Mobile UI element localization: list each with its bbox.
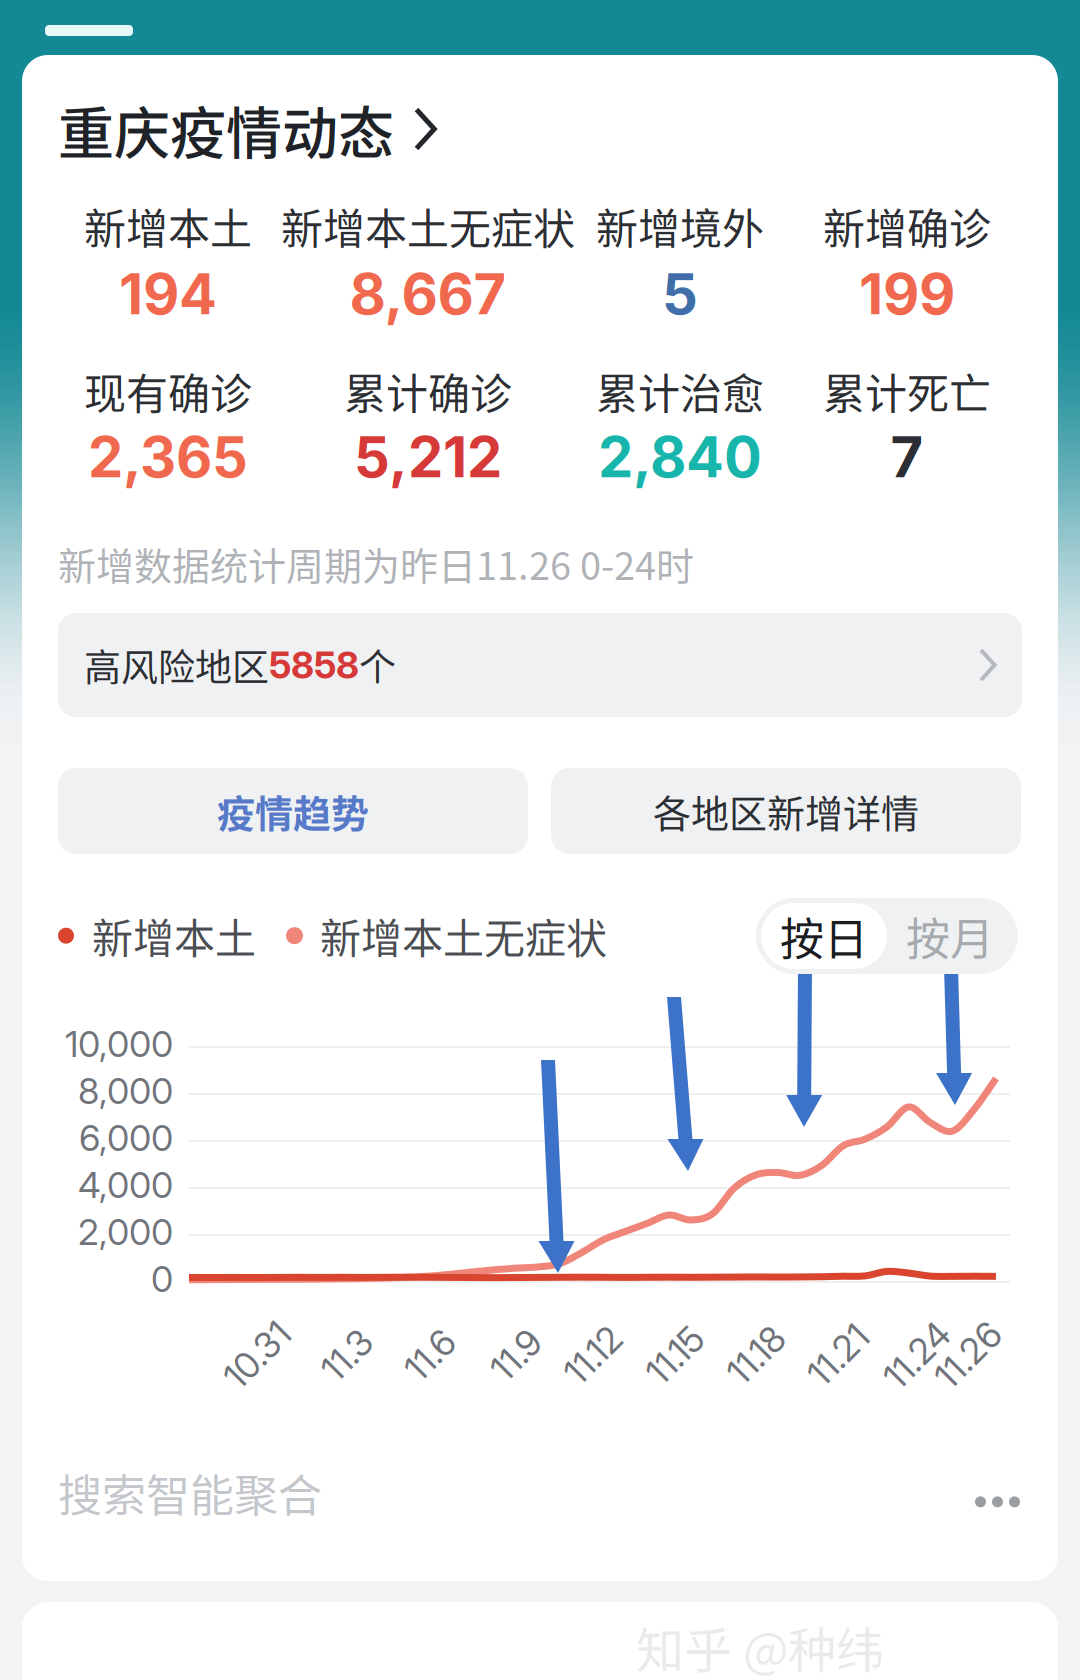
staticText: 5 [662, 260, 698, 328]
staticText: 疫情趋势 [217, 783, 369, 838]
staticText: 搜索智能聚合 [58, 1461, 322, 1525]
staticText: 新增境外 [596, 196, 764, 256]
staticText: 个 [359, 638, 396, 692]
staticText: 高风险地区 [84, 638, 269, 692]
staticText: 11.12 [560, 1333, 625, 1377]
staticText: 各地区新增详情 [653, 783, 919, 838]
staticText: 11.18 [723, 1333, 788, 1377]
staticText: 11.15 [642, 1333, 707, 1377]
staticText: 5,212 [354, 423, 502, 491]
staticText: 11.21 [803, 1333, 872, 1377]
staticText: 按日 [780, 904, 868, 968]
staticText: 7 [890, 423, 923, 491]
button[interactable]: 按日 [761, 903, 887, 969]
staticText: 11.9 [488, 1333, 543, 1377]
staticText: 新增本土无症状 [320, 906, 607, 965]
staticText: 累计确诊 [344, 361, 512, 421]
staticText: 199 [859, 260, 955, 328]
staticText: 11.6 [402, 1333, 457, 1377]
staticText: 新增本土 [92, 906, 256, 965]
staticText: 8,000 [78, 1069, 173, 1113]
staticText: 累计死亡 [823, 361, 991, 421]
staticText: 11.26 [929, 1333, 1006, 1377]
staticText: 8,667 [349, 260, 506, 328]
staticText: 知乎 @种纬 [636, 1612, 884, 1680]
button[interactable]: More [948, 1465, 1020, 1521]
staticText: 11.3 [319, 1333, 375, 1377]
button[interactable]: 各地区新增详情 [551, 768, 1021, 854]
staticText: 2,840 [598, 423, 762, 491]
staticText: 10,000 [65, 1022, 173, 1066]
staticText: 5858 [269, 643, 359, 687]
staticText: 0 [151, 1257, 173, 1301]
staticText: 累计治愈 [596, 361, 764, 421]
staticText: 新增本土无症状 [281, 196, 575, 256]
staticText: 按月 [906, 904, 994, 968]
staticText: 新增本土 [84, 196, 252, 256]
staticText: 4,000 [78, 1163, 173, 1207]
staticText: 6,000 [79, 1116, 173, 1160]
staticText: 194 [119, 260, 217, 328]
staticText: 11.24 [878, 1333, 956, 1377]
staticText: 新增数据统计周期为昨日11.26 0-24时 [58, 536, 694, 591]
button[interactable]: 重庆疫情动态 [58, 99, 436, 159]
button[interactable]: 高风险地区 [58, 613, 1022, 717]
button[interactable]: 疫情趋势 [58, 768, 528, 854]
staticText: 10.31 [218, 1333, 295, 1377]
staticText: 2,000 [78, 1210, 173, 1254]
staticText: 新增确诊 [823, 196, 991, 256]
staticText: 重庆疫情动态 [58, 88, 394, 170]
staticText: 现有确诊 [84, 361, 252, 421]
button[interactable]: 按月 [887, 903, 1013, 969]
staticText: 2,365 [88, 423, 248, 491]
